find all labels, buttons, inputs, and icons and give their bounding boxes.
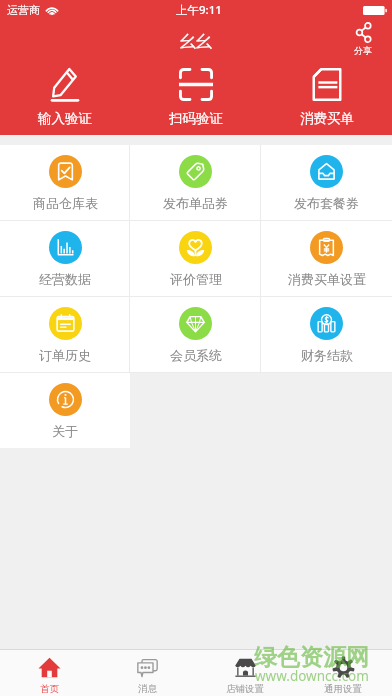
- button[interactable]: 经营数据: [0, 221, 130, 296]
- staticText: www.downcc.com: [255, 667, 369, 685]
- staticText: 扫码验证: [169, 110, 223, 127]
- button[interactable]: 消息: [98, 650, 196, 696]
- button[interactable]: 消费买单: [261, 68, 392, 127]
- staticText: 消息: [138, 683, 157, 695]
- button[interactable]: 评价管理: [130, 221, 261, 296]
- staticText: 通用设置: [324, 683, 362, 695]
- staticText: 关于: [52, 423, 78, 439]
- button[interactable]: 店铺设置: [196, 650, 294, 696]
- button[interactable]: 会员系统: [130, 297, 261, 372]
- staticText: 评价管理: [170, 271, 222, 287]
- staticText: 财务结款: [301, 347, 353, 363]
- staticText: 幺幺: [180, 32, 212, 52]
- staticText: 订单历史: [39, 347, 91, 363]
- staticText: 发布单品券: [163, 195, 228, 211]
- button[interactable]: 财务结款: [261, 297, 392, 372]
- staticText: 经营数据: [39, 271, 91, 287]
- staticText: 绿色资源网: [254, 643, 369, 672]
- button[interactable]: 商品仓库表: [0, 145, 130, 220]
- staticText: 店铺设置: [226, 683, 264, 695]
- button[interactable]: 分享: [349, 20, 377, 58]
- staticText: 消费买单: [300, 110, 354, 127]
- staticText: 运营商: [7, 3, 40, 17]
- button[interactable]: 首页: [0, 650, 98, 696]
- button[interactable]: 通用设置: [294, 650, 392, 696]
- button[interactable]: 发布单品券: [130, 145, 261, 220]
- staticText: 分享: [354, 45, 372, 56]
- staticText: 商品仓库表: [33, 195, 98, 211]
- staticText: 输入验证: [38, 110, 92, 127]
- staticText: 发布套餐券: [294, 195, 359, 211]
- button[interactable]: 输入验证: [0, 68, 130, 127]
- button[interactable]: 关于: [0, 373, 130, 448]
- staticText: 会员系统: [170, 347, 222, 363]
- staticText: 上午9:11: [176, 2, 222, 18]
- button[interactable]: 发布套餐券: [261, 145, 392, 220]
- button[interactable]: 消费买单设置: [261, 221, 392, 296]
- staticText: 消费买单设置: [288, 271, 366, 287]
- staticText: 首页: [40, 683, 59, 695]
- button[interactable]: 扫码验证: [130, 68, 261, 127]
- button[interactable]: 订单历史: [0, 297, 130, 372]
